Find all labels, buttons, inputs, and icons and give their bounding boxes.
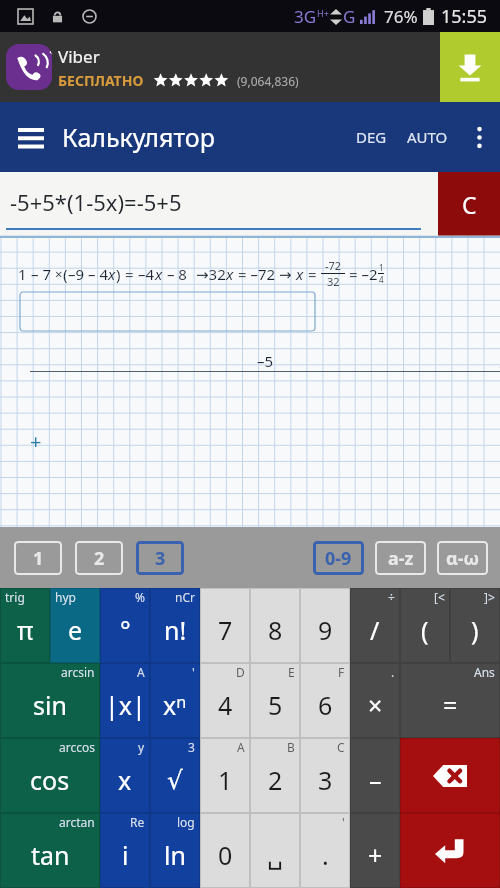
button[interactable]: 5 xyxy=(250,663,300,738)
button[interactable]: cos xyxy=(0,738,100,813)
staticText: БЕСПЛАТНО xyxy=(58,71,144,90)
button[interactable]: × xyxy=(350,663,400,738)
staticText: 2 xyxy=(268,763,283,797)
button[interactable]: 9 xyxy=(300,588,350,663)
button[interactable]: i xyxy=(100,813,150,888)
staticText: Ans xyxy=(474,664,495,680)
staticText: C xyxy=(462,189,477,220)
button[interactable]: 2 xyxy=(75,541,123,575)
button[interactable]: ) xyxy=(450,588,500,663)
staticText: x xyxy=(118,763,132,797)
button[interactable]: π xyxy=(0,588,50,663)
staticText: × xyxy=(368,688,383,722)
button[interactable]: xⁿ xyxy=(150,663,200,738)
staticText: 6 xyxy=(318,688,333,722)
button[interactable]: + xyxy=(350,813,400,888)
staticText: 32 xyxy=(327,274,340,289)
button[interactable]: . xyxy=(300,813,350,888)
staticText: . xyxy=(322,838,329,872)
staticText: 1 xyxy=(218,763,233,797)
button[interactable]: √ xyxy=(150,738,200,813)
button[interactable]: / xyxy=(350,588,400,663)
staticText: = –2 xyxy=(345,264,378,284)
staticText: – xyxy=(369,763,382,797)
staticText: π xyxy=(17,613,34,647)
button[interactable]: 3 xyxy=(136,541,184,575)
button[interactable]: ␣ xyxy=(250,813,300,888)
button[interactable]: 0-9 xyxy=(313,541,364,575)
button[interactable]: 3 xyxy=(300,738,350,813)
staticText: ÷ xyxy=(388,589,395,605)
staticText: – 8 xyxy=(163,264,187,284)
button[interactable]: 1 xyxy=(200,738,250,813)
staticText: ' xyxy=(342,814,345,830)
staticText: 3 xyxy=(318,763,333,797)
button[interactable]: e xyxy=(50,588,100,663)
staticText: -5+5*(1-5x)=-5+5 xyxy=(10,187,182,217)
staticText: arccos xyxy=(59,739,95,755)
staticText: x xyxy=(108,264,116,284)
button[interactable]: Backspace xyxy=(400,738,500,813)
staticText: – 7 xyxy=(31,264,55,284)
staticText: = –72 → xyxy=(234,264,296,284)
button[interactable]: Menu xyxy=(0,102,62,172)
staticText: [< xyxy=(434,589,445,605)
button[interactable]: x xyxy=(100,738,150,813)
button[interactable]: α-ω xyxy=(437,541,488,575)
staticText: 4 xyxy=(218,688,233,722)
staticText: trig xyxy=(5,589,25,605)
staticText: 9 xyxy=(318,613,333,647)
button[interactable]: ( xyxy=(400,588,450,663)
staticText: 4 xyxy=(379,274,384,285)
staticText: 2 xyxy=(94,546,105,571)
button[interactable]: More options xyxy=(458,102,500,172)
staticText: →32 xyxy=(196,264,226,284)
button[interactable]: 7 xyxy=(200,588,250,663)
staticText: (9,064,836) xyxy=(237,73,299,89)
staticText: = xyxy=(121,264,138,284)
button[interactable]: tan xyxy=(0,813,100,888)
button[interactable]: 4 xyxy=(200,663,250,738)
button[interactable]: Viber xyxy=(0,32,500,102)
button[interactable]: n! xyxy=(150,588,200,663)
button[interactable]: 1 xyxy=(14,541,62,575)
staticText: 76% xyxy=(384,5,418,28)
button[interactable]: -5+5*(1-5x)=-5+5 xyxy=(0,172,438,236)
staticText: sin xyxy=(33,688,67,722)
staticText: A xyxy=(137,664,145,680)
button[interactable]: = xyxy=(400,663,500,738)
staticText: F xyxy=(338,664,345,680)
button[interactable]: sin xyxy=(0,663,100,738)
staticText: n! xyxy=(164,613,187,647)
staticText: nCr xyxy=(175,589,195,605)
button[interactable]: DEG xyxy=(346,107,397,167)
staticText: DEG xyxy=(356,127,387,147)
button[interactable]: AUTO xyxy=(397,107,458,167)
staticText: ␣ xyxy=(267,841,283,870)
button[interactable]: 0 xyxy=(200,813,250,888)
button[interactable]: |x| xyxy=(100,663,150,738)
button[interactable]: C xyxy=(438,172,500,236)
staticText: ln xyxy=(164,838,186,872)
staticText: = xyxy=(443,688,458,722)
button[interactable]: 2 xyxy=(250,738,300,813)
button[interactable]: Enter xyxy=(400,813,500,888)
staticText: E xyxy=(288,664,295,680)
button[interactable]: 6 xyxy=(300,663,350,738)
staticText: 1 xyxy=(18,264,31,284)
button[interactable]: 8 xyxy=(250,588,300,663)
button[interactable]: ln xyxy=(150,813,200,888)
staticText: α-ω xyxy=(446,546,480,571)
staticText: AUTO xyxy=(407,127,448,147)
staticText: 1 xyxy=(33,546,44,571)
button[interactable]: ° xyxy=(100,588,150,663)
button[interactable]: a-z xyxy=(375,541,426,575)
button[interactable]: Install xyxy=(440,32,500,102)
staticText: C xyxy=(337,739,345,755)
staticText: + xyxy=(30,428,42,455)
staticText: tan xyxy=(31,838,70,872)
staticText: i xyxy=(122,838,129,872)
staticText: D xyxy=(236,664,245,680)
button[interactable]: – xyxy=(350,738,400,813)
staticText: ( xyxy=(63,264,68,284)
